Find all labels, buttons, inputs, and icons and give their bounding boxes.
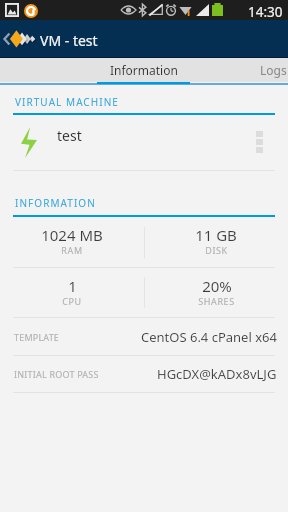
staticText: CentOS 6.4 cPanel x64 [141,328,277,346]
staticText: INITIAL ROOT PASS [14,368,99,380]
staticText: VM - test [40,31,98,50]
button[interactable]: Navigate up [0,20,13,57]
staticText: DISK [205,244,228,256]
button[interactable]: Logs [190,58,288,82]
staticText: 1 [68,276,77,296]
button[interactable]: 20% [144,268,288,317]
button[interactable]: INITIAL ROOT PASS [0,356,288,392]
staticText: test [57,126,82,145]
button[interactable]: test [0,114,288,170]
staticText: TEMPLATE [14,331,60,343]
button[interactable]: 1 [0,268,144,317]
button[interactable]: Information [97,58,190,82]
staticText: 14:30 [248,3,283,21]
staticText: 20% [202,276,232,296]
staticText: RAM [61,244,83,256]
button[interactable]: 11 GB [144,217,288,267]
button[interactable]: More options [244,114,274,170]
staticText: SHARES [198,295,235,307]
staticText: HGcDX@kADx8vLJG [157,365,277,383]
staticText: 11 GB [195,225,237,245]
button[interactable]: TEMPLATE [0,318,288,355]
staticText: Logs [260,62,287,78]
staticText: CPU [62,295,82,307]
staticText: 1024 MB [41,225,103,245]
staticText: INFORMATION [15,196,96,210]
button[interactable]: 1024 MB [0,217,144,267]
staticText: VIRTUAL MACHINE [15,95,119,109]
staticText: Information [110,62,178,78]
